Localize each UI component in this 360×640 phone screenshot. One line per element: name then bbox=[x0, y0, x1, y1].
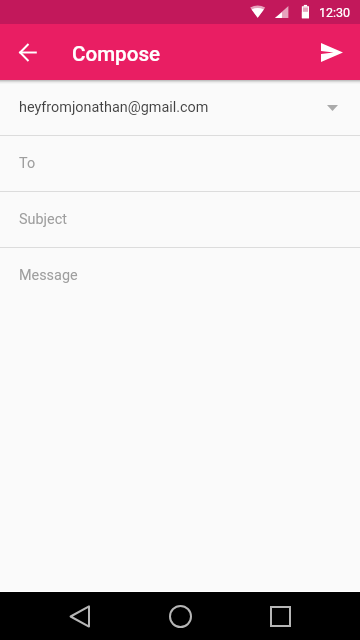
staticText: To bbox=[19, 155, 36, 172]
button[interactable]: To bbox=[0, 136, 360, 191]
button[interactable]: Back bbox=[55, 592, 103, 640]
button[interactable]: Back bbox=[4, 28, 52, 76]
button[interactable]: Home bbox=[156, 592, 204, 640]
staticText: Message bbox=[19, 267, 78, 284]
button[interactable]: Recents bbox=[256, 592, 304, 640]
staticText: heyfromjonathan@gmail.com bbox=[19, 99, 209, 116]
staticText: Subject bbox=[19, 211, 67, 228]
button[interactable]: Send bbox=[308, 28, 356, 76]
button[interactable]: Subject bbox=[0, 192, 360, 247]
staticText: 12:30 bbox=[319, 5, 351, 20]
button[interactable]: Message bbox=[0, 248, 360, 303]
button[interactable]: heyfromjonathan@gmail.com bbox=[0, 80, 360, 135]
staticText: Compose bbox=[72, 42, 161, 66]
